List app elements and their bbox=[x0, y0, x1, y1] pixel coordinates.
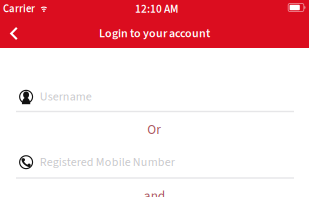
staticText: Or bbox=[147, 120, 161, 139]
staticText: Username bbox=[40, 88, 92, 105]
staticText: Login to your account bbox=[99, 25, 210, 42]
staticText: 12:10 AM bbox=[135, 1, 178, 17]
staticText: Carrier bbox=[3, 1, 35, 17]
staticText: and bbox=[144, 187, 165, 197]
button[interactable]: Back bbox=[0, 16, 29, 50]
staticText: Registered Mobile Number bbox=[40, 154, 175, 171]
button[interactable]: Registered Mobile Number bbox=[19, 151, 295, 173]
button[interactable]: Username bbox=[19, 86, 295, 108]
